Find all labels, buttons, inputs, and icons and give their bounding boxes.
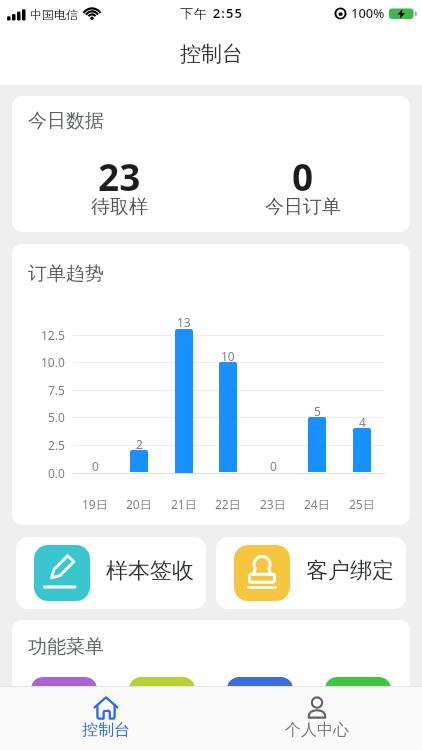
staticText: 10 xyxy=(221,348,235,364)
staticText: 25日 xyxy=(349,496,375,512)
staticText: 4 xyxy=(359,414,366,430)
staticText: 20日 xyxy=(126,496,152,512)
staticText: 12.5 xyxy=(41,327,65,343)
staticText: 订单趋势 xyxy=(28,262,104,286)
staticText: 7.5 xyxy=(48,382,65,398)
staticText: 待取样 xyxy=(91,195,148,219)
staticText: 样本签收 xyxy=(106,557,194,585)
button[interactable] xyxy=(325,677,391,743)
staticText: 今日订单 xyxy=(265,195,341,219)
staticText: 2.5 xyxy=(48,437,65,453)
staticText: 今日数据 xyxy=(28,109,104,133)
button[interactable]: 0 xyxy=(211,136,394,228)
staticText: 5.0 xyxy=(48,409,65,425)
staticText: 0 xyxy=(270,458,277,474)
staticText: 控制台 xyxy=(180,41,243,67)
staticText: 下午 2:55 xyxy=(180,4,243,22)
staticText: 10.0 xyxy=(41,354,65,370)
staticText: 2 xyxy=(136,436,143,452)
button[interactable] xyxy=(31,677,97,743)
staticText: 0 xyxy=(292,151,314,201)
staticText: 21日 xyxy=(171,496,197,512)
staticText: 100% xyxy=(351,4,385,22)
button[interactable]: 控制台 xyxy=(0,687,211,750)
staticText: 控制台 xyxy=(82,720,130,740)
button[interactable]: 客户绑定 xyxy=(216,537,406,609)
button[interactable]: 样本签收 xyxy=(16,537,206,609)
staticText: 13 xyxy=(177,314,191,330)
staticText: 5 xyxy=(314,403,321,419)
staticText: 23日 xyxy=(260,496,286,512)
staticText: 客户绑定 xyxy=(306,557,394,585)
staticText: 24日 xyxy=(304,496,330,512)
button[interactable] xyxy=(227,677,293,743)
button[interactable] xyxy=(129,677,195,743)
staticText: 中国电信 xyxy=(30,7,78,22)
staticText: 功能菜单 xyxy=(28,635,104,659)
staticText: 个人中心 xyxy=(285,720,349,740)
staticText: 0 xyxy=(92,458,99,474)
button[interactable]: 个人中心 xyxy=(211,687,422,750)
staticText: 0.0 xyxy=(48,465,65,481)
staticText: 23 xyxy=(98,151,141,201)
staticText: 22日 xyxy=(215,496,241,512)
button[interactable]: 23 xyxy=(28,136,211,228)
staticText: 19日 xyxy=(82,496,108,512)
